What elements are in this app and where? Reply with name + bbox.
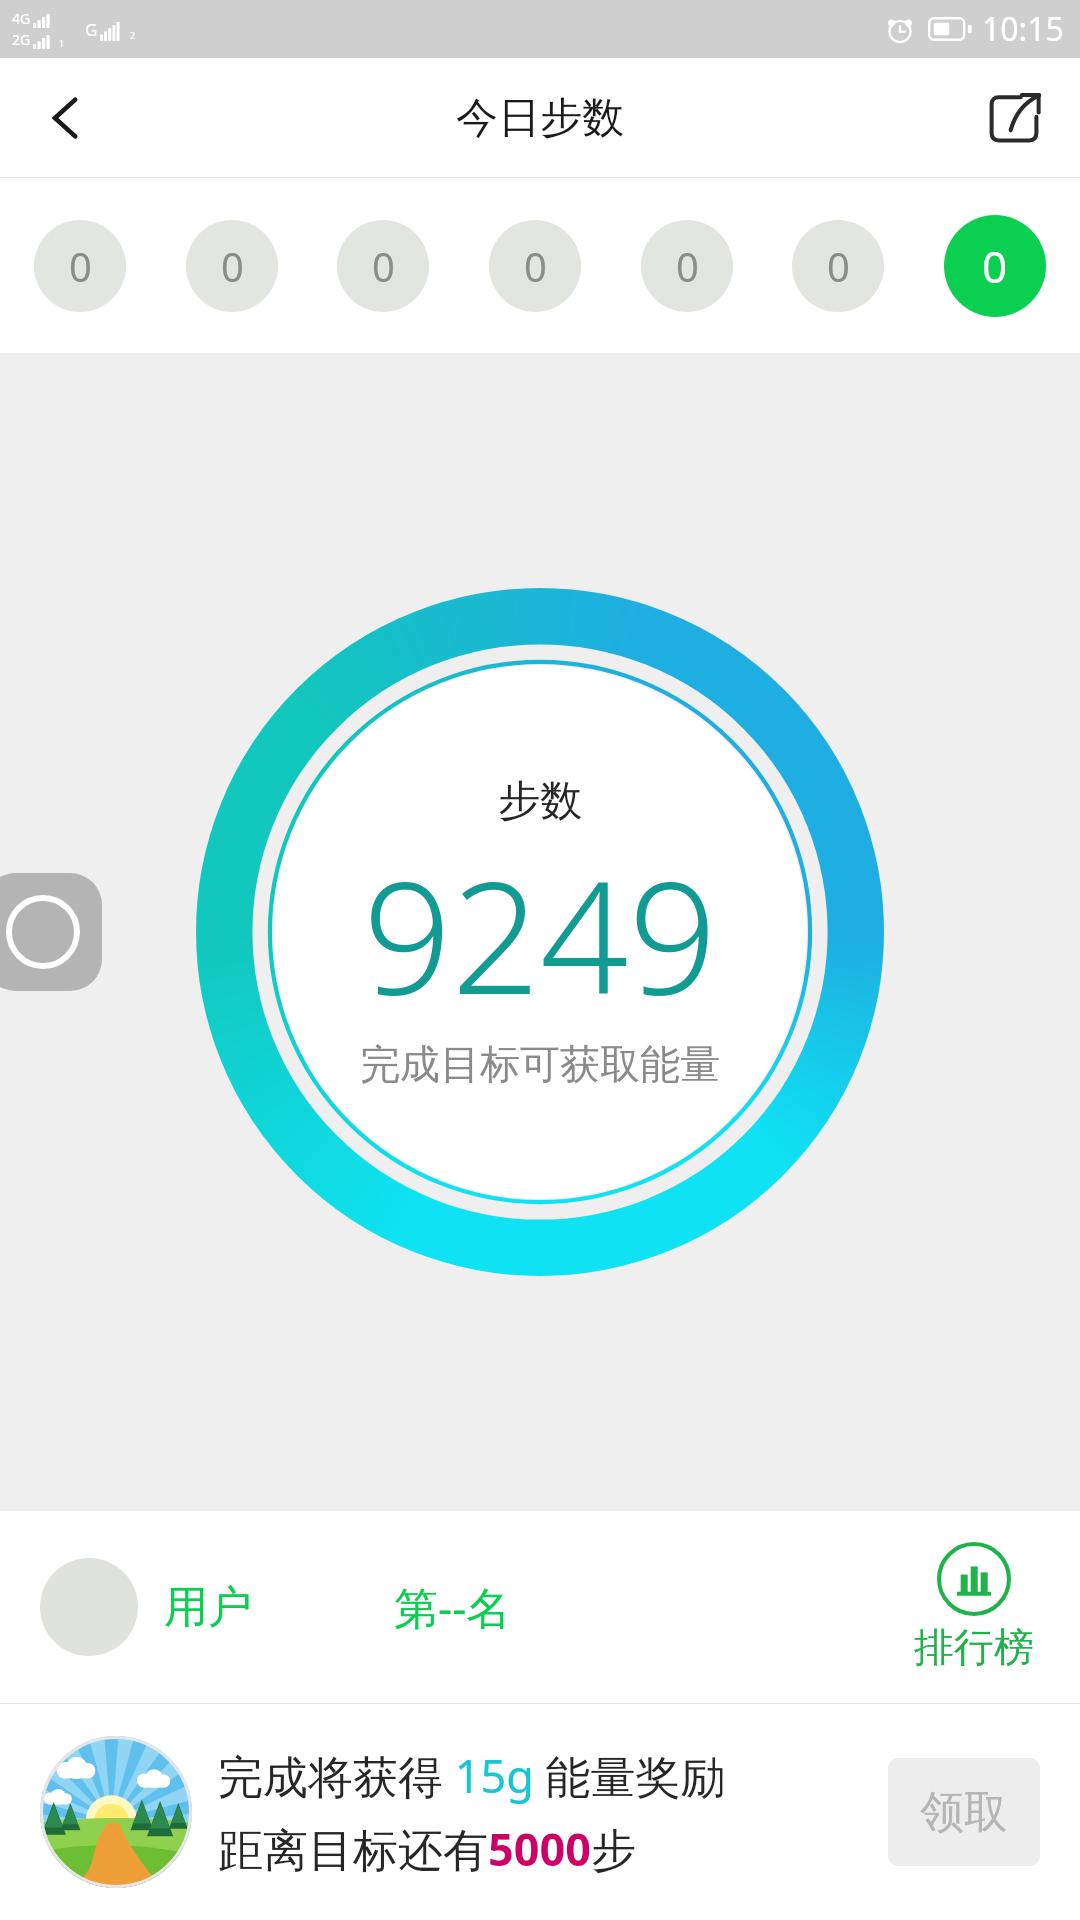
staticText: 完成目标可获取能量	[360, 1039, 720, 1089]
staticText: 步数	[498, 775, 582, 828]
staticText: 0	[372, 239, 395, 293]
staticText: 领取	[920, 1785, 1008, 1840]
staticText: 0	[69, 239, 92, 293]
staticText: 距离目标还有5000步	[218, 1818, 636, 1879]
staticText: 2	[130, 29, 136, 41]
staticText: 完成将获得 15g 能量奖励	[218, 1745, 726, 1806]
button[interactable]: 0	[337, 220, 429, 312]
button[interactable]	[40, 1558, 138, 1656]
button[interactable]: 排行榜	[908, 1538, 1040, 1676]
button[interactable]: Assistive touch	[0, 873, 102, 991]
staticText: 排行榜	[914, 1622, 1034, 1672]
staticText: 今日步数	[456, 92, 624, 145]
staticText: 0	[524, 239, 547, 293]
staticText: 0	[676, 239, 699, 293]
button[interactable]: 0	[34, 220, 126, 312]
staticText: 9249	[363, 828, 718, 1039]
staticText: 第--名	[394, 1577, 511, 1637]
staticText: 10:15	[982, 7, 1064, 51]
staticText: 4G	[12, 9, 31, 28]
button[interactable]: Back	[26, 78, 106, 158]
staticText: G	[85, 18, 98, 41]
button[interactable]: 领取	[888, 1758, 1040, 1866]
staticText: 用户	[164, 1580, 252, 1635]
button[interactable]: 0	[792, 220, 884, 312]
staticText: 0	[221, 239, 244, 293]
staticText: 2G	[12, 30, 31, 49]
button[interactable]: 0	[489, 220, 581, 312]
button[interactable]: 0	[944, 215, 1046, 317]
staticText: 0	[982, 236, 1008, 296]
button[interactable]: Share	[972, 76, 1056, 160]
staticText: 1	[59, 37, 65, 49]
button[interactable]: 0	[186, 220, 278, 312]
button[interactable]: 0	[641, 220, 733, 312]
staticText: 0	[827, 239, 850, 293]
